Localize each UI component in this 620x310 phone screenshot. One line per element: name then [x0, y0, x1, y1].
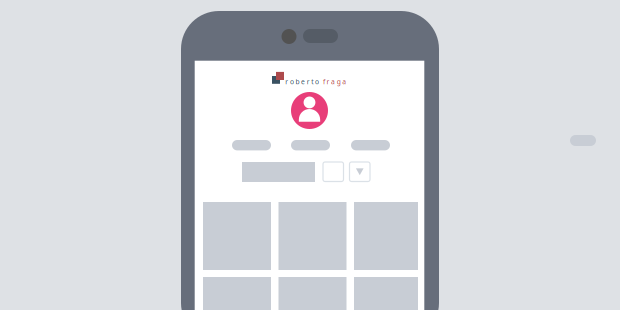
staticText: fraga: [323, 77, 346, 86]
staticText: roberto: [285, 77, 319, 86]
